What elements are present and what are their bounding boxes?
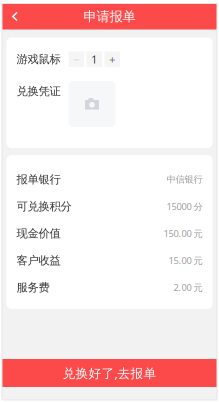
staticText: 2.00 元 [173,281,202,294]
staticText: 客户收益 [16,253,60,268]
button[interactable]: Increase quantity [104,51,120,67]
staticText: − [73,52,79,66]
staticText: 1 [91,52,97,66]
staticText: + [109,52,115,66]
staticText: 可兑换积分 [16,199,71,214]
button[interactable]: Decrease quantity [68,51,84,67]
staticText: 150.00 元 [163,227,202,240]
staticText: 现金价值 [16,226,60,241]
button[interactable]: Back [2,3,28,29]
button[interactable]: Upload redemption voucher photo [68,81,115,127]
staticText: 游戏鼠标 [16,52,60,66]
staticText: 服务费 [16,280,49,295]
staticText: 15.00 元 [168,254,202,267]
button[interactable]: 兑换好了,去报单 [2,359,217,387]
staticText: 15000 分 [166,200,202,213]
staticText: 兑换凭证 [16,84,60,98]
staticText: 报单银行 [16,172,60,187]
staticText: 兑换好了,去报单 [62,364,156,382]
staticText: 申请报单 [83,8,135,25]
staticText: 中信银行 [166,174,202,185]
